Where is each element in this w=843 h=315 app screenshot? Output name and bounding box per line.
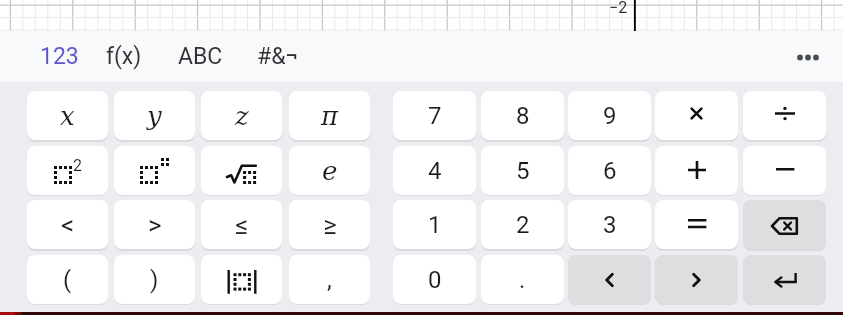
staticText: 9: [603, 102, 617, 130]
staticText: 1: [428, 211, 442, 239]
button[interactable]: 2: [481, 200, 564, 249]
staticText: <: [61, 210, 75, 240]
staticText: ): [150, 266, 159, 294]
button[interactable]: [201, 255, 282, 304]
staticText: ≤: [235, 210, 249, 240]
staticText: ABC: [178, 43, 223, 70]
button[interactable]: π: [289, 91, 370, 140]
button[interactable]: z: [201, 91, 282, 140]
staticText: 7: [428, 102, 442, 130]
staticText: 8: [516, 102, 530, 130]
button[interactable]: [743, 146, 826, 195]
button[interactable]: [743, 91, 826, 140]
button[interactable]: ,: [289, 255, 370, 304]
staticText: 2: [516, 211, 530, 239]
button[interactable]: ≥: [289, 200, 370, 249]
button[interactable]: [786, 40, 830, 74]
button[interactable]: 5: [481, 146, 564, 195]
button[interactable]: 9: [568, 91, 651, 140]
button[interactable]: #&¬: [246, 31, 310, 82]
staticText: ,: [327, 266, 332, 294]
button[interactable]: 0: [393, 255, 476, 304]
button[interactable]: <: [27, 200, 108, 249]
button[interactable]: .: [481, 255, 564, 304]
staticText: x: [60, 101, 75, 131]
button[interactable]: x: [27, 91, 108, 140]
button[interactable]: 3: [568, 200, 651, 249]
button[interactable]: ABC: [168, 31, 233, 82]
button[interactable]: 1: [393, 200, 476, 249]
button[interactable]: [114, 146, 195, 195]
staticText: 6: [603, 157, 617, 185]
button[interactable]: 6: [568, 146, 651, 195]
button[interactable]: e: [289, 146, 370, 195]
staticText: 123: [40, 43, 79, 70]
button[interactable]: 4: [393, 146, 476, 195]
staticText: 3: [603, 211, 617, 239]
button[interactable]: [743, 200, 826, 249]
button[interactable]: y: [114, 91, 195, 140]
button[interactable]: ): [114, 255, 195, 304]
button[interactable]: [655, 255, 738, 304]
staticText: >: [148, 210, 162, 240]
staticText: 4: [428, 157, 442, 185]
button[interactable]: >: [114, 200, 195, 249]
button[interactable]: 8: [481, 91, 564, 140]
staticText: (: [63, 266, 72, 294]
button[interactable]: [655, 146, 738, 195]
staticText: 5: [516, 157, 530, 185]
staticText: f(x): [106, 43, 142, 70]
button[interactable]: [568, 255, 651, 304]
staticText: e: [322, 156, 338, 186]
staticText: 2: [73, 156, 82, 175]
button[interactable]: 123: [31, 31, 87, 82]
button[interactable]: 2: [27, 146, 108, 195]
button[interactable]: f(x): [94, 31, 154, 82]
staticText: .: [519, 266, 526, 294]
staticText: y: [147, 101, 162, 131]
staticText: 0: [428, 266, 442, 294]
button[interactable]: [655, 91, 738, 140]
staticText: z: [235, 101, 249, 131]
staticText: #&¬: [257, 43, 299, 70]
button[interactable]: ≤: [201, 200, 282, 249]
button[interactable]: (: [27, 255, 108, 304]
staticText: −2: [609, 0, 628, 17]
staticText: π: [321, 101, 339, 131]
button[interactable]: [743, 255, 826, 304]
staticText: ≥: [323, 210, 337, 240]
button[interactable]: [655, 200, 738, 249]
button[interactable]: [201, 146, 282, 195]
button[interactable]: 7: [393, 91, 476, 140]
